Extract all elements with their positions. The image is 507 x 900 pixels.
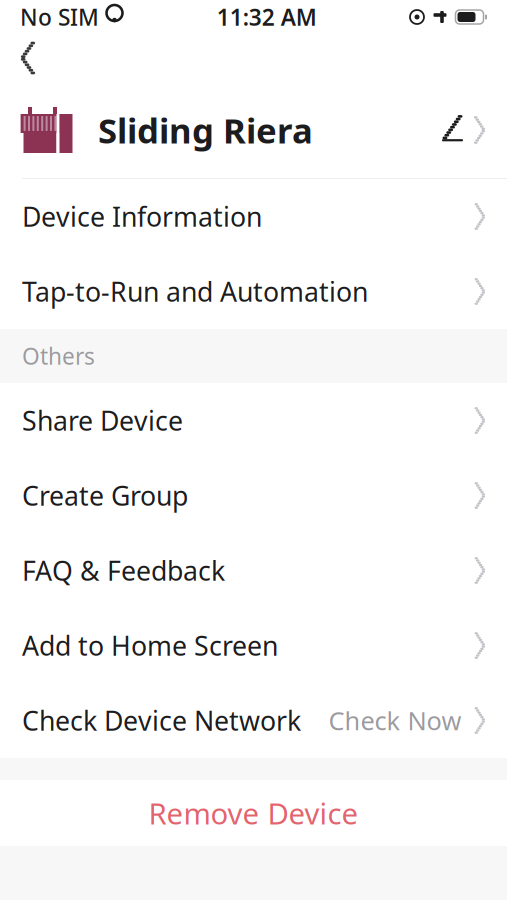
button[interactable]: FAQ & Feedback <box>0 533 507 608</box>
staticText: Create Group <box>22 478 188 513</box>
staticText: Remove Device <box>148 793 358 832</box>
staticText: No SIM <box>20 2 99 32</box>
staticText: Others <box>22 341 95 371</box>
button[interactable]: Tap-to-Run and Automation <box>0 254 507 329</box>
button[interactable]: Remove Device <box>0 780 507 846</box>
button[interactable]: Add to Home Screen <box>0 608 507 683</box>
staticText: Check Device Network <box>22 703 301 738</box>
staticText: Share Device <box>22 403 183 438</box>
staticText: FAQ & Feedback <box>22 553 225 588</box>
staticText: Tap-to-Run and Automation <box>22 274 368 309</box>
staticText: Sliding Riera <box>98 107 313 153</box>
button[interactable]: Back <box>6 36 50 80</box>
staticText: Add to Home Screen <box>22 628 278 663</box>
staticText: Check Now <box>329 704 462 737</box>
button[interactable]: Device Information <box>0 179 507 254</box>
staticText: Device Information <box>22 199 262 234</box>
button[interactable]: Sliding Riera <box>0 82 507 178</box>
staticText: 11:32 AM <box>217 2 317 32</box>
button[interactable]: Share Device <box>0 383 507 458</box>
button[interactable]: Check Device Network <box>0 683 507 758</box>
button[interactable]: Create Group <box>0 458 507 533</box>
